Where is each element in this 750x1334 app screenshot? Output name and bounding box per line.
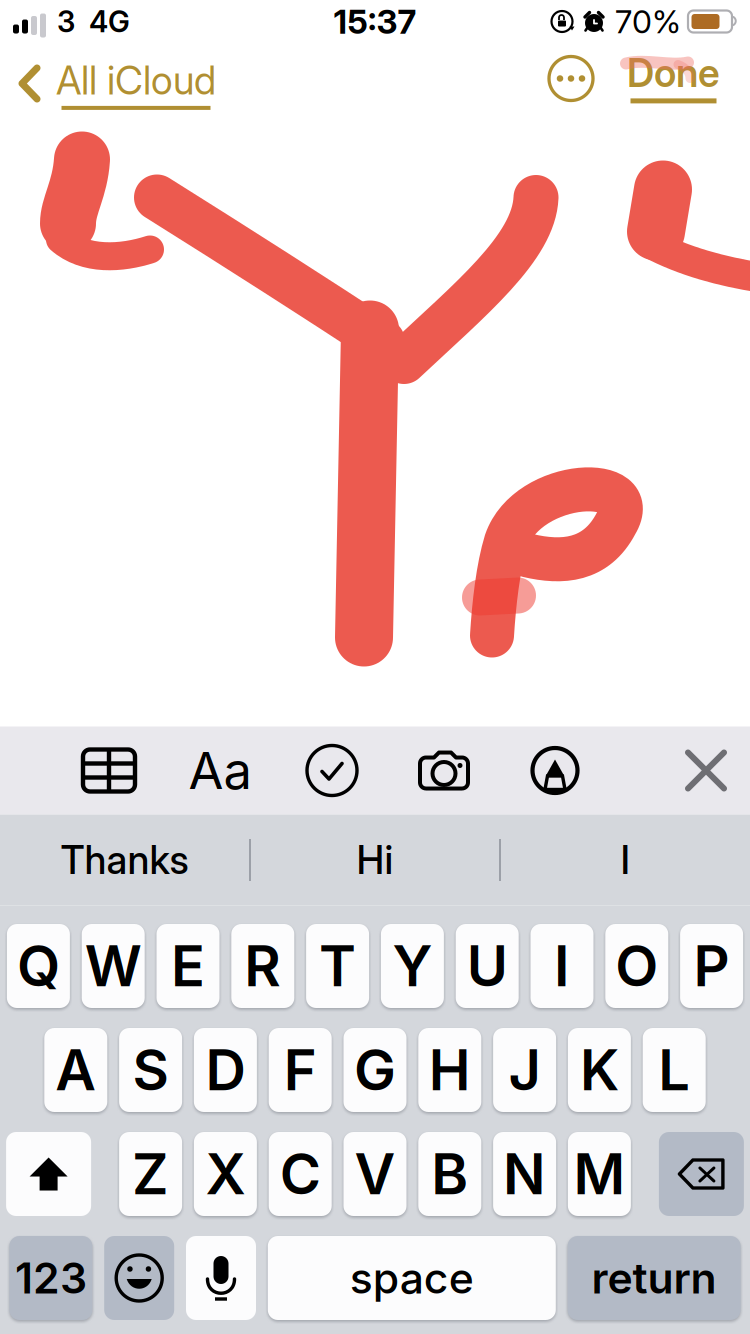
- button[interactable]: Done: [627, 46, 720, 117]
- button[interactable]: E: [156, 924, 219, 1008]
- staticText: F: [284, 1036, 317, 1104]
- button[interactable]: K: [568, 1028, 631, 1112]
- staticText: I: [620, 837, 630, 883]
- button[interactable]: Close: [662, 726, 750, 814]
- staticText: U: [467, 932, 508, 1000]
- staticText: C: [280, 1140, 321, 1208]
- staticText: I: [554, 932, 570, 1000]
- button[interactable]: J: [493, 1028, 556, 1112]
- button[interactable]: R: [231, 924, 294, 1008]
- staticText: B: [431, 1140, 468, 1208]
- staticText: H: [429, 1036, 471, 1104]
- button[interactable]: Dictate: [186, 1236, 256, 1320]
- staticText: Z: [132, 1140, 169, 1208]
- button[interactable]: W: [82, 924, 145, 1008]
- staticText: S: [133, 1036, 169, 1104]
- staticText: space: [350, 1252, 474, 1304]
- staticText: X: [205, 1140, 245, 1208]
- button[interactable]: P: [680, 924, 743, 1008]
- staticText: 3: [57, 4, 75, 39]
- button[interactable]: space: [268, 1236, 556, 1320]
- button[interactable]: Y: [381, 924, 444, 1008]
- staticText: A: [55, 1036, 96, 1104]
- staticText: 4G: [89, 4, 130, 39]
- button[interactable]: X: [194, 1132, 257, 1216]
- button[interactable]: Q: [7, 924, 70, 1008]
- button[interactable]: Checklist: [276, 726, 388, 814]
- button[interactable]: I: [530, 924, 593, 1008]
- button[interactable]: A: [44, 1028, 107, 1112]
- button[interactable]: Emoji: [104, 1236, 174, 1320]
- button[interactable]: Delete: [659, 1132, 744, 1216]
- staticText: P: [694, 932, 730, 1000]
- staticText: E: [171, 932, 205, 1000]
- button[interactable]: Markup: [500, 726, 610, 814]
- button[interactable]: 123: [9, 1236, 92, 1320]
- button[interactable]: S: [119, 1028, 182, 1112]
- button[interactable]: Hi: [251, 814, 499, 905]
- button[interactable]: U: [456, 924, 519, 1008]
- button[interactable]: Thanks: [0, 814, 249, 905]
- staticText: R: [244, 932, 281, 1000]
- button[interactable]: All iCloud: [0, 45, 226, 118]
- button[interactable]: V: [343, 1132, 406, 1216]
- staticText: M: [573, 1140, 625, 1208]
- staticText: G: [354, 1036, 396, 1104]
- button[interactable]: Format: [164, 726, 276, 814]
- button[interactable]: Z: [119, 1132, 182, 1216]
- button[interactable]: H: [418, 1028, 481, 1112]
- staticText: 123: [15, 1252, 87, 1304]
- button[interactable]: B: [418, 1132, 481, 1216]
- button[interactable]: C: [269, 1132, 332, 1216]
- button[interactable]: I: [501, 814, 750, 905]
- staticText: Aa: [188, 740, 251, 801]
- button[interactable]: Table: [54, 726, 164, 814]
- staticText: J: [509, 1036, 541, 1104]
- staticText: D: [205, 1036, 245, 1104]
- staticText: K: [580, 1036, 619, 1104]
- button[interactable]: G: [343, 1028, 406, 1112]
- button[interactable]: F: [269, 1028, 332, 1112]
- staticText: All iCloud: [56, 57, 216, 104]
- button[interactable]: Shift: [6, 1132, 91, 1216]
- staticText: O: [615, 932, 658, 1000]
- button[interactable]: return: [568, 1236, 741, 1320]
- staticText: V: [354, 1140, 395, 1208]
- staticText: 70%: [615, 2, 681, 41]
- staticText: L: [658, 1036, 690, 1104]
- staticText: Thanks: [60, 837, 188, 883]
- button[interactable]: D: [194, 1028, 257, 1112]
- button[interactable]: Camera: [388, 726, 500, 814]
- staticText: Hi: [356, 837, 393, 883]
- staticText: 15:37: [333, 1, 416, 42]
- staticText: Done: [627, 50, 720, 96]
- staticText: N: [503, 1140, 546, 1208]
- button[interactable]: N: [493, 1132, 556, 1216]
- staticText: return: [592, 1252, 717, 1304]
- button[interactable]: More: [541, 48, 601, 114]
- staticText: W: [85, 932, 142, 1000]
- button[interactable]: M: [568, 1132, 631, 1216]
- button[interactable]: O: [605, 924, 668, 1008]
- staticText: T: [319, 932, 356, 1000]
- staticText: Y: [392, 932, 432, 1000]
- button[interactable]: T: [306, 924, 369, 1008]
- staticText: Q: [17, 932, 60, 1000]
- button[interactable]: L: [643, 1028, 706, 1112]
